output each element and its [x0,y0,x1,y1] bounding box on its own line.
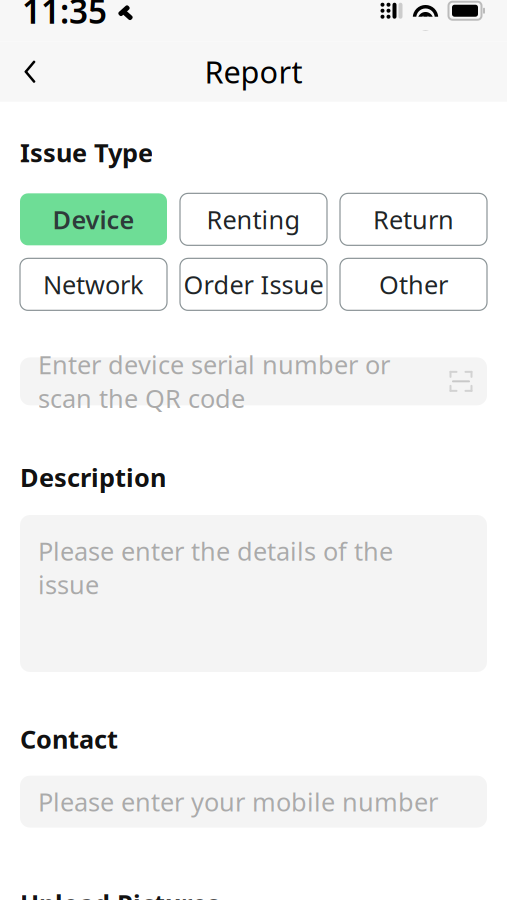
button[interactable]: Please enter your mobile number [20,776,487,828]
staticText: Device [52,202,134,236]
staticText: Other [379,267,448,301]
button[interactable]: Other [340,258,487,310]
staticText: Enter device serial number or scan the Q… [38,348,390,415]
staticText: Return [373,202,454,236]
button[interactable]: Return [340,193,487,245]
staticText: 11:35 [22,0,107,33]
staticText: Renting [206,202,300,236]
button[interactable]: Network [20,258,167,310]
staticText: Network [43,267,144,301]
staticText: Description [20,460,166,494]
button[interactable]: Back [8,50,52,94]
staticText: Please enter your mobile number [38,785,438,818]
staticText: Contact [20,722,118,756]
button[interactable]: Enter device serial number or scan the Q… [20,357,487,405]
staticText: Upload Pictures [20,887,220,900]
button[interactable]: Renting [180,193,327,245]
button[interactable]: Order Issue [180,258,327,310]
staticText: Report [204,51,302,92]
button[interactable]: Device [20,193,167,245]
staticText: Please enter the details of the issue [38,534,393,601]
button[interactable]: Please enter the details of the issue [20,515,487,672]
staticText: Issue Type [20,136,153,169]
staticText: Order Issue [183,267,323,301]
